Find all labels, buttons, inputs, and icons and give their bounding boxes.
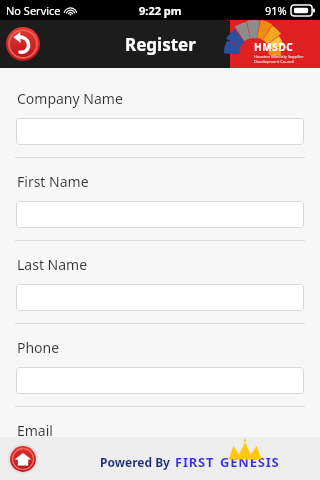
staticText: Last Name (17, 255, 88, 274)
staticText: Phone (17, 338, 60, 357)
staticText: Register (125, 33, 196, 56)
staticText: Houston Minority Supplier (254, 54, 304, 59)
button[interactable]: Home (8, 444, 38, 474)
button[interactable]: Company Name (16, 118, 304, 145)
staticText: HMSDC (254, 40, 294, 54)
staticText: Email (17, 421, 53, 437)
button[interactable]: Last Name (16, 284, 304, 311)
staticText: 9:22 pm (139, 3, 182, 18)
button[interactable]: First Name (16, 201, 304, 228)
staticText: Company Name (17, 89, 123, 108)
staticText: First Name (17, 172, 89, 191)
staticText: Development Council (254, 59, 295, 64)
button[interactable]: Phone (16, 367, 304, 394)
staticText: GENESIS (220, 453, 280, 471)
button[interactable]: Back (6, 27, 40, 61)
staticText: FIRST (175, 453, 215, 471)
staticText: Powered By (100, 454, 170, 470)
staticText: 91% (265, 3, 287, 18)
staticText: No Service (6, 3, 61, 18)
button[interactable]: HMSDC (230, 20, 320, 68)
